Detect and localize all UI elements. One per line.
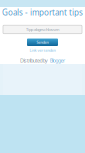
staticText: Blogger	[50, 57, 65, 64]
staticText: Distributed by	[20, 57, 48, 64]
button[interactable]: Senden	[27, 38, 58, 46]
button[interactable]: Blogger	[50, 57, 65, 64]
staticText: Tipp abgeschlossen	[26, 27, 59, 32]
staticText: Senden	[36, 40, 48, 45]
staticText: Goals - important tips	[2, 7, 83, 18]
staticText: Link versenden	[29, 47, 55, 53]
button[interactable]: Link versenden	[29, 47, 55, 53]
